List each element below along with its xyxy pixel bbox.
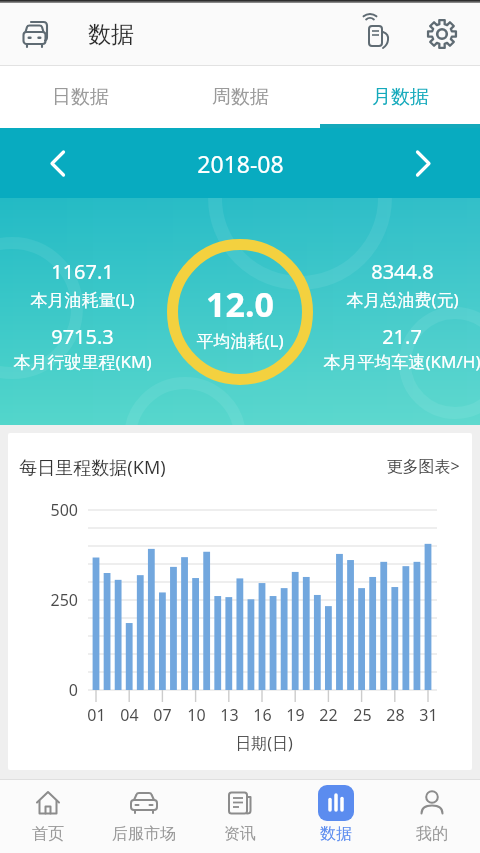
staticText: 周数据 [212, 85, 269, 109]
staticText: 28 [386, 704, 405, 726]
staticText: 本月行驶里程(KM) [13, 350, 152, 373]
button[interactable] [12, 3, 58, 65]
staticText: 500 [50, 499, 78, 521]
staticText: 8344.8 [371, 258, 434, 285]
staticText: 本月平均车速(KM/H) [323, 350, 480, 373]
staticText: 月数据 [372, 85, 429, 109]
staticText: 首页 [32, 824, 64, 844]
staticText: 19 [286, 704, 305, 726]
staticText: 01 [87, 704, 106, 726]
staticText: 21.7 [382, 323, 422, 350]
staticText: 2018-08 [197, 148, 284, 179]
staticText: 31 [419, 704, 438, 726]
button[interactable]: 首页 [0, 780, 96, 853]
staticText: 日期(日) [235, 732, 293, 754]
button[interactable]: 数据 [288, 780, 384, 853]
staticText: 更多图表> [386, 455, 460, 477]
button[interactable]: 更多图表> [386, 455, 460, 477]
staticText: 每日里程数据(KM) [19, 455, 166, 480]
button[interactable]: 我的 [384, 780, 480, 853]
staticText: 04 [120, 704, 139, 726]
staticText: 13 [220, 704, 239, 726]
staticText: 资讯 [224, 824, 256, 844]
staticText: 本月总油费(元) [346, 288, 459, 311]
staticText: 我的 [416, 824, 448, 844]
staticText: 后服市场 [112, 824, 176, 844]
button[interactable] [353, 3, 403, 65]
staticText: 平均油耗(L) [196, 329, 284, 352]
button[interactable]: 月数据 [320, 66, 480, 128]
staticText: 9715.3 [51, 323, 114, 350]
staticText: 数据 [320, 824, 352, 844]
button[interactable]: 日数据 [0, 66, 160, 128]
staticText: 1167.1 [51, 258, 114, 285]
button[interactable] [406, 146, 440, 180]
button[interactable]: 后服市场 [96, 780, 192, 853]
staticText: 12.0 [206, 281, 274, 327]
staticText: 10 [187, 704, 206, 726]
staticText: 日数据 [52, 85, 109, 109]
staticText: 25 [353, 704, 372, 726]
button[interactable] [417, 3, 467, 65]
staticText: 本月油耗量(L) [30, 288, 135, 311]
button[interactable]: 周数据 [160, 66, 320, 128]
staticText: 250 [50, 589, 78, 611]
staticText: 数据 [88, 20, 134, 49]
button[interactable]: 资讯 [192, 780, 288, 853]
staticText: 22 [319, 704, 338, 726]
staticText: 16 [253, 704, 272, 726]
staticText: 0 [68, 679, 78, 701]
staticText: 07 [153, 704, 172, 726]
button[interactable] [40, 146, 74, 180]
